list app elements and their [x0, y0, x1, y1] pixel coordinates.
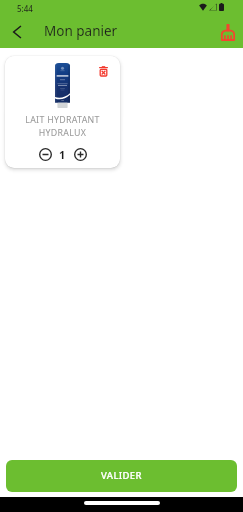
staticText: 5:44 [17, 3, 33, 14]
button[interactable]: Back [4, 19, 30, 45]
button[interactable]: Increase quantity [71, 145, 89, 163]
button[interactable]: Clear cart [215, 19, 241, 45]
button[interactable]: Delete item [97, 65, 110, 78]
staticText: 1 [59, 147, 66, 162]
staticText: VALIDER [101, 469, 142, 482]
button[interactable]: Decrease quantity [36, 145, 54, 163]
staticText: Mon panier [44, 22, 118, 40]
button[interactable]: VALIDER [6, 460, 237, 492]
staticText: LAIT HYDRATANT HYDRALUX [25, 114, 100, 138]
button[interactable]: Delete item [5, 56, 120, 168]
